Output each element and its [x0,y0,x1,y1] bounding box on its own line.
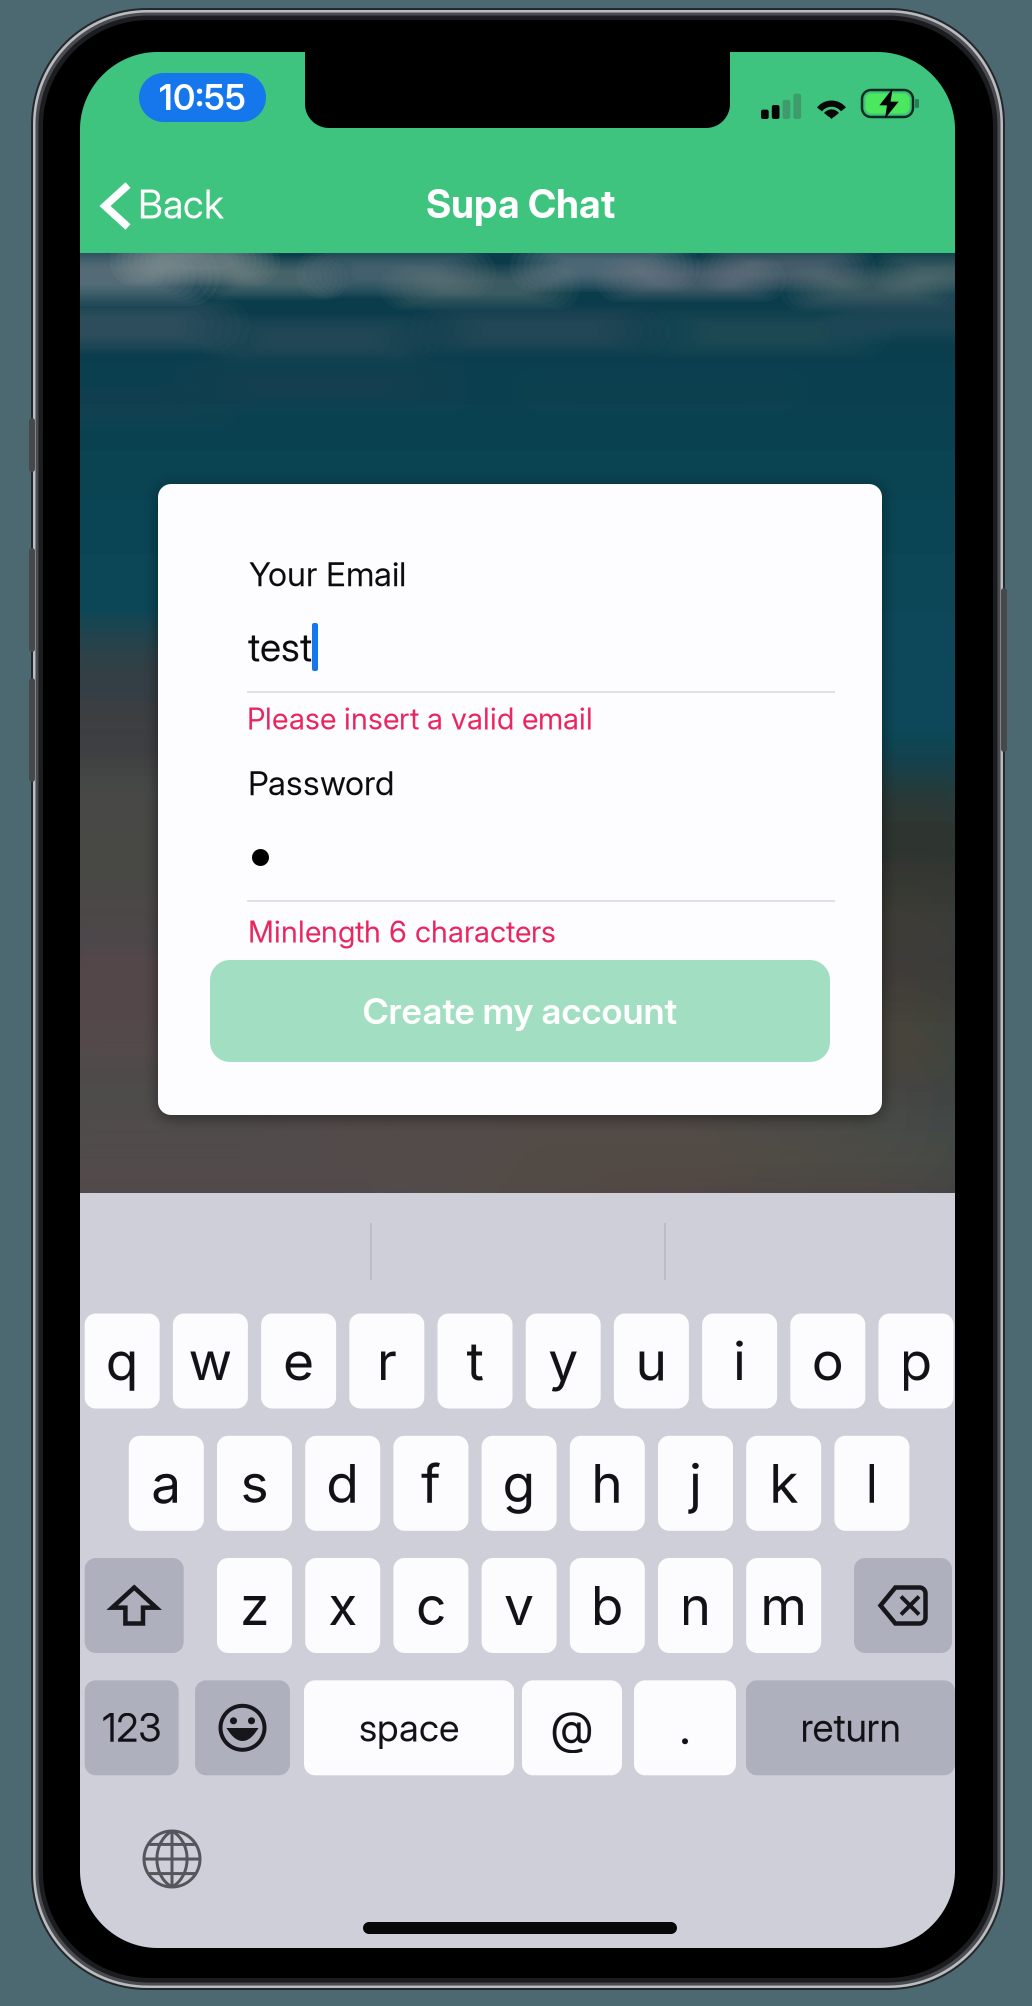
button[interactable]: c [393,1558,468,1653]
staticText: n [679,1573,711,1638]
button[interactable]: 123 [85,1680,179,1775]
staticText: i [733,1329,746,1393]
staticText: @ [550,1700,594,1755]
button[interactable]: Create my account [210,960,830,1062]
staticText: Supa Chat [426,181,615,227]
staticText: space [359,1705,459,1750]
button[interactable]: n [658,1558,733,1653]
button[interactable]: f [393,1436,468,1531]
staticText: u [635,1329,667,1393]
staticText: k [769,1451,798,1515]
button[interactable]: i [702,1313,777,1408]
staticText: Please insert a valid email [247,701,593,736]
staticText: v [504,1573,534,1638]
staticText: p [899,1329,932,1393]
staticText: g [503,1451,536,1515]
button[interactable]: d [305,1436,380,1531]
staticText: w [188,1329,232,1393]
button[interactable]: Delete [854,1558,952,1653]
staticText: a [151,1451,181,1515]
button[interactable]: a [129,1436,204,1531]
staticText: b [591,1573,624,1638]
button[interactable]: z [217,1558,292,1653]
button[interactable]: @ [522,1680,622,1775]
staticText: c [416,1573,446,1638]
button[interactable]: b [570,1558,645,1653]
button[interactable]: w [173,1313,248,1408]
staticText: e [283,1329,314,1393]
button[interactable]: Shift [85,1558,184,1653]
button[interactable]: Next keyboard [130,1817,214,1901]
staticText: 10:55 [159,76,246,118]
staticText: Password [248,763,394,803]
button[interactable]: l [834,1436,909,1531]
staticText: f [421,1451,441,1515]
staticText: t [466,1329,483,1393]
staticText: j [689,1451,702,1515]
staticText: y [548,1329,578,1393]
button[interactable]: g [482,1436,557,1531]
button[interactable]: t [437,1313,512,1408]
staticText: o [812,1329,844,1393]
staticText: z [240,1573,269,1638]
button[interactable]: q [85,1313,160,1408]
staticText: test [248,624,312,671]
staticText: r [377,1329,397,1393]
button[interactable]: r [349,1313,424,1408]
staticText: s [240,1451,268,1515]
button[interactable]: p [878,1313,953,1408]
button[interactable]: e [261,1313,336,1408]
button[interactable]: u [614,1313,689,1408]
button[interactable]: space [304,1680,514,1775]
button[interactable]: x [305,1558,380,1653]
staticText: Minlength 6 characters [248,914,556,949]
staticText: d [326,1451,359,1515]
staticText: 123 [102,1704,161,1751]
button[interactable]: j [658,1436,733,1531]
button[interactable]: s [217,1436,292,1531]
staticText: l [865,1451,878,1515]
button[interactable]: k [746,1436,821,1531]
staticText: m [760,1573,807,1638]
button[interactable]: y [526,1313,601,1408]
button[interactable]: Back [80,151,270,221]
staticText: Back [138,181,224,228]
staticText: Your Email [249,554,406,594]
button[interactable]: v [482,1558,557,1653]
button[interactable]: . [634,1680,736,1775]
staticText: Create my account [362,989,677,1033]
button[interactable]: o [790,1313,865,1408]
button[interactable]: Emoji [195,1680,290,1775]
button[interactable]: return [746,1680,955,1775]
staticText: return [800,1704,900,1751]
button[interactable]: h [570,1436,645,1531]
staticText: q [106,1329,139,1393]
staticText: x [328,1573,357,1638]
staticText: h [591,1451,623,1515]
staticText: . [678,1700,691,1755]
button[interactable]: m [746,1558,821,1653]
